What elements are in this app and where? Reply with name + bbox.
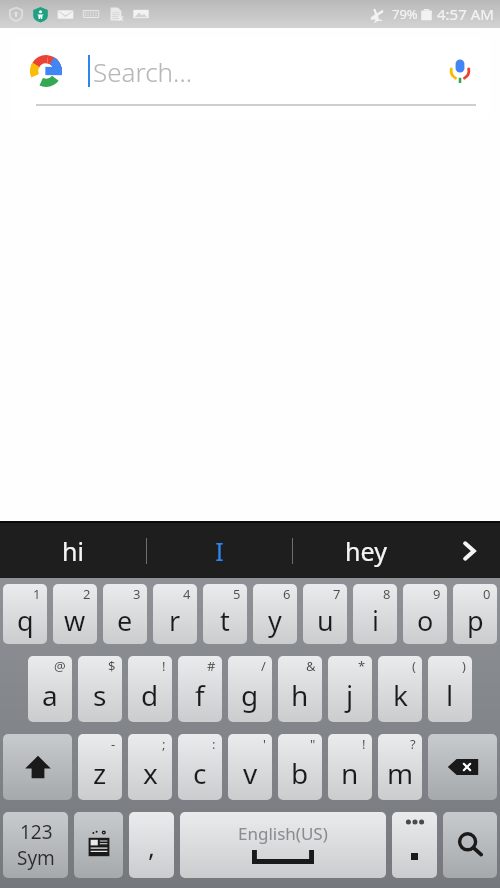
staticText: d [141, 676, 159, 714]
staticText: 1 [33, 585, 41, 603]
staticText: k [393, 676, 408, 714]
button[interactable]: 8 [353, 584, 397, 644]
staticText: Search... [93, 54, 193, 89]
button[interactable]: 3 [103, 584, 147, 644]
button[interactable]: : [178, 734, 222, 800]
staticText: - [111, 735, 116, 753]
button[interactable]: ) [428, 656, 472, 722]
staticText: 8 [383, 585, 391, 603]
staticText: / [261, 657, 266, 675]
staticText: @ [54, 657, 66, 675]
staticText: a [42, 676, 58, 714]
staticText: hi [62, 534, 84, 568]
button[interactable]: / [228, 656, 272, 722]
staticText: f [195, 676, 205, 714]
staticText: 123 [20, 819, 53, 845]
button[interactable]: 6 [253, 584, 297, 644]
button[interactable]: @ [28, 656, 72, 722]
staticText: o [417, 602, 434, 639]
staticText: z [93, 754, 107, 792]
staticText: ; [162, 735, 166, 753]
button[interactable]: 123 [3, 812, 68, 878]
button[interactable]: ! [328, 734, 372, 800]
staticText: g [241, 676, 259, 714]
button[interactable]: ( [378, 656, 422, 722]
staticText: m [387, 754, 414, 792]
staticText: Sym [17, 845, 55, 871]
staticText: 79% [392, 5, 418, 23]
staticText: ) [462, 657, 466, 675]
button[interactable]: ; [128, 734, 172, 800]
staticText: i [372, 602, 379, 639]
staticText: 9 [433, 585, 441, 603]
staticText: q [17, 602, 34, 639]
staticText: ! [162, 657, 166, 675]
staticText: x [143, 754, 158, 792]
button[interactable]: - [78, 734, 122, 800]
staticText: y [268, 602, 282, 639]
staticText: : [212, 735, 216, 753]
staticText: v [243, 754, 258, 792]
button[interactable]: " [278, 734, 322, 800]
staticText: t [220, 602, 230, 639]
button[interactable]: $ [78, 656, 122, 722]
staticText: * [358, 657, 366, 675]
staticText: ( [412, 657, 416, 675]
staticText: & [306, 657, 316, 675]
button[interactable]: Search... [10, 38, 490, 120]
staticText: 3 [133, 585, 141, 603]
button[interactable]: * [328, 656, 372, 722]
staticText: I [215, 534, 224, 568]
button[interactable]: 4 [153, 584, 197, 644]
staticText: ! [362, 735, 366, 753]
staticText: $ [108, 657, 116, 675]
staticText: w [64, 602, 86, 639]
staticText: 5 [233, 585, 241, 603]
staticText: h [291, 676, 309, 714]
staticText: j [346, 676, 354, 714]
button[interactable]: Voice search [438, 49, 482, 93]
button[interactable]: 9 [403, 584, 447, 644]
button[interactable]: 1 [3, 584, 47, 644]
button[interactable]: 0 [453, 584, 497, 644]
staticText: s [93, 676, 107, 714]
button[interactable]: Backspace [428, 734, 497, 800]
staticText: # [207, 657, 216, 675]
staticText: e [117, 602, 133, 639]
staticText: r [169, 602, 181, 639]
staticText: p [467, 602, 484, 639]
button[interactable]: 2 [53, 584, 97, 644]
button[interactable]: hey [293, 523, 438, 578]
staticText: hey [345, 534, 387, 568]
staticText: " [310, 735, 316, 753]
button[interactable]: & [278, 656, 322, 722]
staticText: c [193, 754, 207, 792]
staticText: u [317, 602, 334, 639]
button[interactable]: 5 [203, 584, 247, 644]
staticText: 0 [483, 585, 491, 603]
button[interactable]: Period [392, 812, 437, 878]
button[interactable]: , [129, 812, 174, 878]
button[interactable]: # [178, 656, 222, 722]
staticText: b [291, 754, 309, 792]
staticText: 4:57 AM [437, 4, 494, 24]
staticText: 4 [183, 585, 191, 603]
button[interactable]: More suggestions [438, 523, 500, 578]
button[interactable]: ' [228, 734, 272, 800]
button[interactable]: hi [0, 523, 146, 578]
staticText: ' [263, 735, 266, 753]
button[interactable]: ? [378, 734, 422, 800]
button[interactable]: ! [128, 656, 172, 722]
button[interactable]: Search [443, 812, 497, 878]
button[interactable]: Shift [3, 734, 72, 800]
button[interactable]: 7 [303, 584, 347, 644]
staticText: 7 [333, 585, 341, 603]
button[interactable]: Space [180, 812, 386, 878]
staticText: l [446, 676, 454, 714]
button[interactable]: I [147, 523, 292, 578]
staticText: ? [410, 735, 416, 753]
staticText: 6 [283, 585, 291, 603]
button[interactable]: Input options [74, 812, 123, 878]
staticText: , [148, 829, 155, 864]
staticText: English(US) [238, 822, 328, 845]
